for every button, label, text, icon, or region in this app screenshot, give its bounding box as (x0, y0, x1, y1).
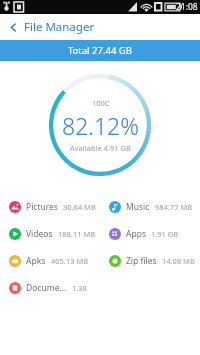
staticText: 1.38 MB (72, 283, 100, 293)
button[interactable]: Videos (0, 220, 100, 247)
staticText: Total 27.44 GB (68, 44, 132, 57)
staticText: 30.64 MB (63, 202, 96, 212)
button[interactable]: Back (0, 14, 200, 40)
staticText: Apks (26, 255, 46, 267)
staticText: 100C (92, 98, 110, 108)
staticText: Apps (126, 228, 146, 240)
staticText: 14.08 MB (162, 256, 195, 266)
staticText: Videos (26, 228, 53, 240)
staticText: File Manager (24, 19, 95, 35)
button[interactable]: Music (100, 193, 200, 220)
button[interactable]: Zip files (100, 247, 200, 274)
button[interactable]: Docume... (0, 274, 100, 301)
staticText: 405.13 MB (51, 256, 89, 266)
staticText: Music (126, 201, 150, 213)
staticText: 188.11 MB (58, 229, 96, 239)
staticText: 82.12% (62, 110, 139, 141)
staticText: Docume... (26, 282, 67, 294)
other: Back (8, 22, 19, 33)
staticText: Pictures (26, 201, 58, 213)
button[interactable]: Pictures (0, 193, 100, 220)
staticText: Zip files (126, 255, 157, 267)
staticText: 1.91 GB (151, 229, 179, 239)
button[interactable]: Apks (0, 247, 100, 274)
button[interactable]: Apps (100, 220, 200, 247)
staticText: 21:08 (176, 1, 198, 13)
staticText: 984.77 MB (155, 202, 193, 212)
staticText: Available 4.91 GB (70, 143, 131, 153)
